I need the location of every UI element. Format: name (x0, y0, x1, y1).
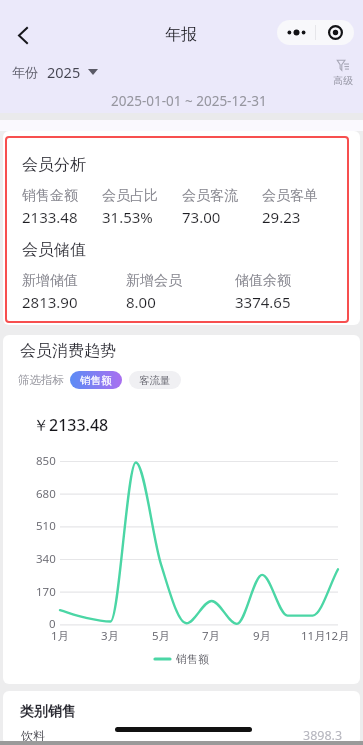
staticText: 5月 (152, 628, 171, 644)
staticText: 170 (36, 584, 56, 600)
button[interactable]: 客流量 (129, 371, 181, 389)
staticText: 11月 (301, 628, 326, 644)
staticText: 2133.48 (22, 207, 78, 227)
staticText: 7月 (202, 628, 221, 644)
button[interactable]: Close mini program (316, 20, 354, 45)
button[interactable]: 销售额 (70, 371, 122, 389)
staticText: 3月 (101, 628, 120, 644)
button[interactable]: More options (277, 20, 315, 45)
staticText: 1月 (51, 628, 70, 644)
staticText: 340 (36, 551, 56, 567)
staticText: 2025-01-01 ~ 2025-12-31 (111, 92, 267, 110)
staticText: 会员分析 (22, 155, 86, 175)
staticText: 饮料 (21, 728, 45, 743)
staticText: 新增会员 (126, 272, 182, 290)
staticText: 31.53% (102, 207, 153, 227)
staticText: 年份 (12, 64, 38, 80)
staticText: 储值余额 (235, 272, 291, 290)
button[interactable]: 高级 (327, 59, 359, 91)
staticText: 2813.90 (22, 292, 78, 312)
staticText: 9月 (253, 628, 272, 644)
staticText: 销售额 (80, 374, 112, 387)
staticText: 2025 (47, 62, 81, 82)
staticText: 850 (36, 453, 56, 469)
staticText: ￥2133.48 (33, 414, 109, 436)
staticText: 3898.3 (303, 727, 343, 744)
staticText: 680 (36, 486, 56, 502)
staticText: 销售金额 (22, 187, 78, 205)
staticText: 会员客流 (182, 187, 238, 205)
staticText: 会员消费趋势 (20, 341, 116, 361)
staticText: 高级 (333, 74, 353, 87)
staticText: 29.23 (262, 207, 301, 227)
staticText: 73.00 (182, 207, 221, 227)
staticText: 筛选指标 (18, 373, 64, 387)
staticText: 类别销售 (20, 703, 76, 721)
staticText: 会员占比 (102, 187, 158, 205)
staticText: 12月 (325, 628, 350, 644)
staticText: 新增储值 (22, 272, 78, 290)
staticText: 8.00 (126, 292, 156, 312)
staticText: 3374.65 (235, 292, 291, 312)
staticText: 510 (36, 518, 56, 534)
staticText: 会员储值 (22, 240, 86, 260)
staticText: 年报 (165, 25, 197, 45)
staticText: 会员客单 (262, 187, 318, 205)
button[interactable]: 年份 (12, 62, 98, 82)
staticText: 客流量 (139, 374, 171, 387)
staticText: 0 (49, 616, 56, 632)
staticText: 销售额 (176, 652, 209, 666)
button[interactable]: Back (3, 16, 42, 55)
